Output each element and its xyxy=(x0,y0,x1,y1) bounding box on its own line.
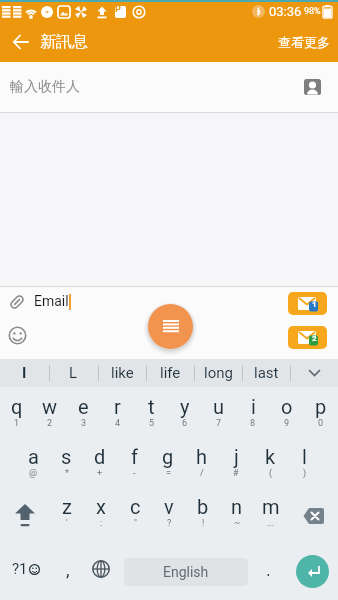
button[interactable]: n xyxy=(220,495,254,537)
staticText: / xyxy=(200,468,204,479)
staticText: ?1 xyxy=(12,560,28,578)
staticText: y xyxy=(180,395,190,418)
button[interactable]: e xyxy=(66,395,100,437)
button[interactable]: m xyxy=(254,495,288,537)
staticText: 2 xyxy=(312,334,317,343)
staticText: k xyxy=(265,445,276,468)
staticText: ' xyxy=(66,518,68,529)
button[interactable]: i xyxy=(236,395,270,437)
button[interactable]: f xyxy=(117,445,151,487)
button[interactable]: v xyxy=(152,495,186,537)
button[interactable]: x xyxy=(84,495,118,537)
button[interactable]: c xyxy=(118,495,152,537)
staticText: English xyxy=(163,564,209,580)
button[interactable] xyxy=(8,326,27,345)
button[interactable]: like xyxy=(98,359,146,387)
staticText: f xyxy=(131,445,138,468)
button[interactable] xyxy=(0,21,40,62)
staticText: q xyxy=(11,395,23,418)
button[interactable]: . xyxy=(257,545,279,593)
staticText: Email xyxy=(34,293,69,309)
staticText: 98% xyxy=(304,6,321,17)
staticText: 查看更多 xyxy=(278,34,330,50)
staticText: ! xyxy=(202,518,205,529)
button[interactable]: l xyxy=(287,445,321,487)
button[interactable]: z xyxy=(50,495,84,537)
staticText: 1 xyxy=(14,418,20,429)
button[interactable]: long xyxy=(194,359,242,387)
staticText: r xyxy=(114,395,121,418)
button[interactable]: j xyxy=(219,445,253,487)
staticText: g xyxy=(162,445,174,468)
button[interactable]: o xyxy=(270,395,304,437)
button[interactable]: a xyxy=(17,445,50,487)
button[interactable]: last xyxy=(242,359,290,387)
staticText: 8 xyxy=(250,418,256,429)
button[interactable]: I xyxy=(0,359,49,387)
staticText: 5 xyxy=(149,418,155,429)
button[interactable]: s xyxy=(50,445,83,487)
staticText: # xyxy=(233,468,239,479)
staticText: x xyxy=(96,495,106,518)
staticText: 0 xyxy=(318,418,324,429)
staticText: 2 xyxy=(47,418,53,429)
staticText: : xyxy=(100,518,103,529)
staticText: @ xyxy=(29,468,38,479)
staticText: 6 xyxy=(182,418,188,429)
staticText: ~ xyxy=(234,518,241,529)
button[interactable]: q xyxy=(0,395,33,437)
button[interactable]: , xyxy=(56,545,80,593)
button[interactable]: w xyxy=(33,395,66,437)
staticText: a xyxy=(28,445,39,468)
staticText: d xyxy=(94,445,106,468)
staticText: ( xyxy=(269,468,273,479)
staticText: life xyxy=(160,364,181,382)
staticText: " xyxy=(134,518,137,529)
staticText: like xyxy=(111,364,134,382)
button[interactable]: r xyxy=(100,395,134,437)
staticText: 1 xyxy=(312,300,317,309)
button[interactable] xyxy=(88,545,114,593)
button[interactable] xyxy=(288,495,338,537)
button[interactable]: y xyxy=(168,395,202,437)
button[interactable] xyxy=(148,304,193,349)
button[interactable]: ?1 xyxy=(6,545,46,593)
button[interactable]: b xyxy=(186,495,220,537)
button[interactable]: 查看更多 xyxy=(270,26,338,58)
staticText: c xyxy=(130,495,141,518)
staticText: ... xyxy=(267,518,275,529)
button[interactable] xyxy=(296,555,329,588)
staticText: w xyxy=(42,395,58,418)
staticText: 9 xyxy=(284,418,290,429)
staticText: 輸入收件人 xyxy=(10,78,80,96)
button[interactable]: d xyxy=(83,445,117,487)
staticText: ? xyxy=(167,518,172,529)
button[interactable] xyxy=(290,359,338,387)
button[interactable]: k xyxy=(253,445,287,487)
button[interactable]: L xyxy=(49,359,98,387)
staticText: o xyxy=(281,395,293,418)
staticText: + xyxy=(97,468,103,479)
staticText: u xyxy=(213,395,225,418)
button[interactable]: life xyxy=(146,359,194,387)
staticText: * xyxy=(65,468,69,479)
staticText: j xyxy=(234,445,239,468)
button[interactable]: p xyxy=(304,395,338,437)
button[interactable]: u xyxy=(202,395,236,437)
staticText: 7 xyxy=(216,418,222,429)
staticText: b xyxy=(197,495,209,518)
button[interactable] xyxy=(0,495,50,537)
button[interactable]: 1 xyxy=(288,292,327,315)
button[interactable]: g xyxy=(151,445,185,487)
button[interactable]: h xyxy=(185,445,219,487)
button[interactable]: 2 xyxy=(288,326,327,349)
button[interactable] xyxy=(304,79,321,95)
staticText: . xyxy=(266,559,271,580)
staticText: 03:36 xyxy=(269,4,302,19)
staticText: P xyxy=(115,4,121,15)
staticText: = xyxy=(166,468,171,479)
staticText: last xyxy=(254,364,279,382)
staticText: , xyxy=(66,559,70,580)
button[interactable]: t xyxy=(134,395,168,437)
button[interactable]: English xyxy=(124,558,248,586)
